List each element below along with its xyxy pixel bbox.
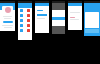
button[interactable] [18, 1, 32, 40]
button[interactable] [84, 1, 100, 36]
button[interactable] [35, 1, 49, 33]
button[interactable] [52, 1, 65, 34]
button[interactable] [68, 1, 82, 30]
button[interactable] [3, 21, 13, 23]
button[interactable] [0, 1, 15, 31]
